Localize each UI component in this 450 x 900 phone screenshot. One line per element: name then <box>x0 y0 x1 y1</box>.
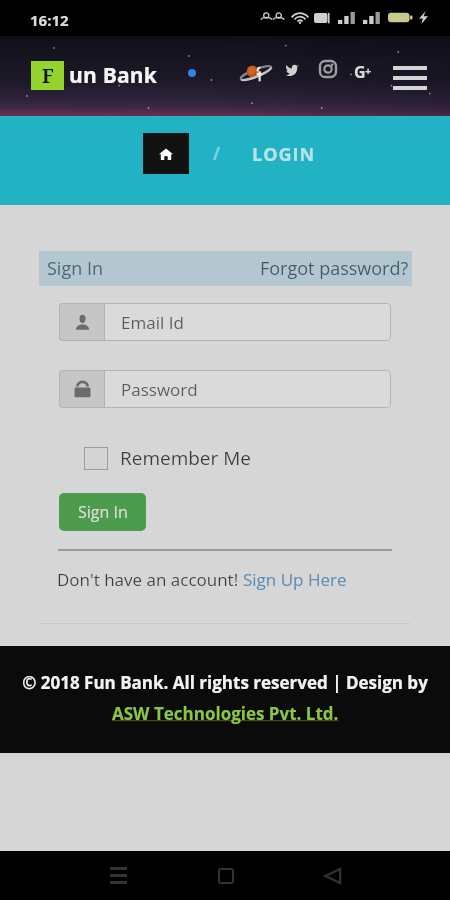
button[interactable]: Recents <box>96 853 141 898</box>
button[interactable]: Sign Up Here <box>243 568 347 591</box>
button[interactable]: ASW Technologies Pvt. Ltd. <box>112 702 339 725</box>
staticText: Sign In <box>47 256 103 281</box>
staticText: un Bank <box>69 61 158 90</box>
button[interactable]: Menu <box>393 66 427 90</box>
button[interactable]: Remember Me <box>84 445 251 471</box>
button[interactable]: Google Plus <box>354 61 376 81</box>
button[interactable]: Home <box>143 133 189 174</box>
button[interactable]: F <box>31 61 158 90</box>
button[interactable]: Back <box>310 853 355 898</box>
button[interactable]: Sign In <box>59 493 146 531</box>
staticText: Remember Me <box>120 445 251 471</box>
staticText: Password <box>121 378 198 401</box>
staticText: © 2018 Fun Bank. All rights reserved | D… <box>22 671 428 694</box>
button[interactable]: LOGIN <box>252 142 316 167</box>
staticText: / <box>213 142 221 165</box>
staticText: Sign In <box>78 501 128 523</box>
button[interactable]: Twitter <box>284 61 300 78</box>
button[interactable]: Forgot password? <box>260 256 409 281</box>
button[interactable]: Instagram <box>319 60 337 78</box>
staticText: G <box>354 61 366 81</box>
staticText: F <box>42 63 54 89</box>
staticText: 16:12 <box>30 10 69 30</box>
staticText: Don't have an account! <box>57 568 243 591</box>
button[interactable]: Home <box>203 853 248 898</box>
button[interactable]: Facebook <box>239 56 273 90</box>
staticText: + <box>365 63 372 78</box>
staticText: Email Id <box>121 311 184 334</box>
